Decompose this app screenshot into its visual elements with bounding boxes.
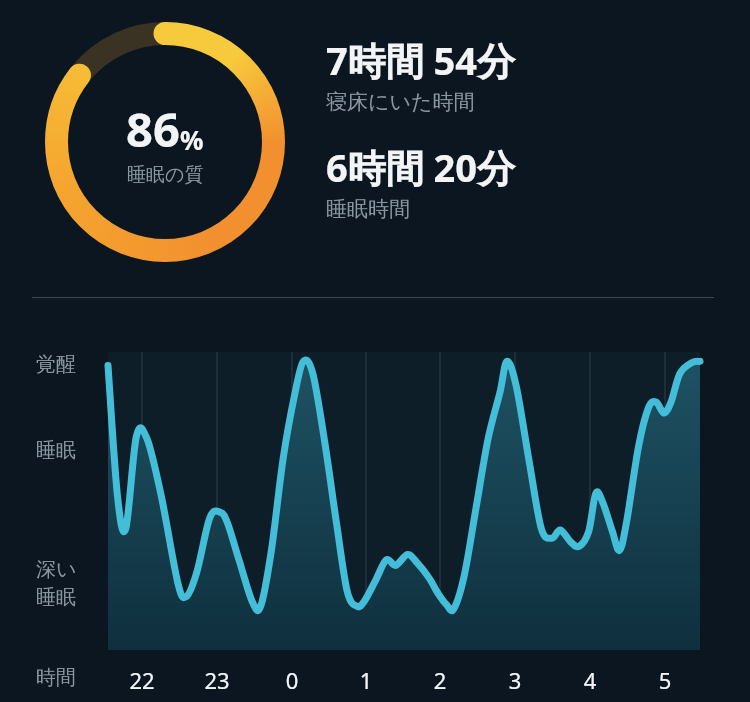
staticText: 時間 bbox=[36, 665, 76, 690]
button[interactable]: 睡眠の質 86パーセント bbox=[45, 22, 285, 262]
staticText: 睡眠 bbox=[36, 438, 76, 463]
staticText: 7時間 54分 bbox=[326, 34, 516, 86]
staticText: 23 bbox=[195, 665, 239, 695]
staticText: % bbox=[180, 122, 204, 157]
staticText: 22 bbox=[120, 665, 164, 695]
staticText: 4 bbox=[568, 665, 612, 695]
staticText: 覚醒 bbox=[36, 352, 76, 377]
staticText: 寝床にいた時間 bbox=[326, 89, 475, 115]
staticText: 睡眠の質 bbox=[127, 163, 204, 187]
staticText: 睡眠時間 bbox=[326, 196, 410, 222]
button[interactable]: 睡眠ステージのグラフ bbox=[0, 330, 750, 655]
staticText: 5 bbox=[643, 665, 687, 695]
staticText: 2 bbox=[418, 665, 462, 695]
staticText: 3 bbox=[493, 665, 537, 695]
staticText: 0 bbox=[270, 665, 314, 695]
staticText: 睡眠 bbox=[36, 585, 76, 610]
staticText: 深い bbox=[36, 557, 77, 582]
staticText: 86 bbox=[126, 97, 180, 161]
staticText: 6時間 20分 bbox=[326, 141, 516, 193]
staticText: 1 bbox=[344, 665, 388, 695]
